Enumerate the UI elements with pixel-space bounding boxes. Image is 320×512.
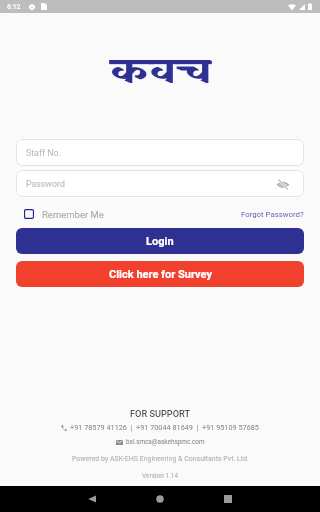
staticText: FOR SUPPORT bbox=[130, 408, 191, 419]
button[interactable]: Home bbox=[140, 486, 180, 512]
button[interactable]: Staff No. bbox=[16, 139, 304, 166]
button[interactable]: Back bbox=[72, 486, 112, 512]
staticText: Login bbox=[146, 235, 174, 248]
staticText: bsl.smca@askehspmc.com bbox=[126, 438, 205, 446]
button[interactable]: Show password bbox=[275, 176, 291, 192]
staticText: Staff No. bbox=[26, 148, 61, 158]
button[interactable]: Recent apps bbox=[208, 486, 248, 512]
staticText: Click here for Survey bbox=[109, 268, 212, 281]
staticText: Version 1.14 bbox=[142, 472, 179, 480]
staticText: Remember Me bbox=[42, 209, 104, 220]
staticText: कवच bbox=[109, 34, 212, 94]
button[interactable]: Click here for Survey bbox=[16, 261, 304, 287]
staticText: Powered by ASK-EHS Engineering & Consult… bbox=[72, 455, 249, 463]
button[interactable]: Password bbox=[16, 170, 304, 197]
button[interactable]: Login bbox=[16, 228, 304, 254]
staticText: +91 78579 41126 | +91 70044 81649 | +91 … bbox=[70, 423, 259, 432]
staticText: Password bbox=[26, 179, 65, 189]
staticText: 6:12 bbox=[7, 3, 21, 11]
button[interactable]: Remember Me bbox=[24, 207, 104, 222]
button[interactable]: Forgot Password? bbox=[241, 208, 304, 221]
